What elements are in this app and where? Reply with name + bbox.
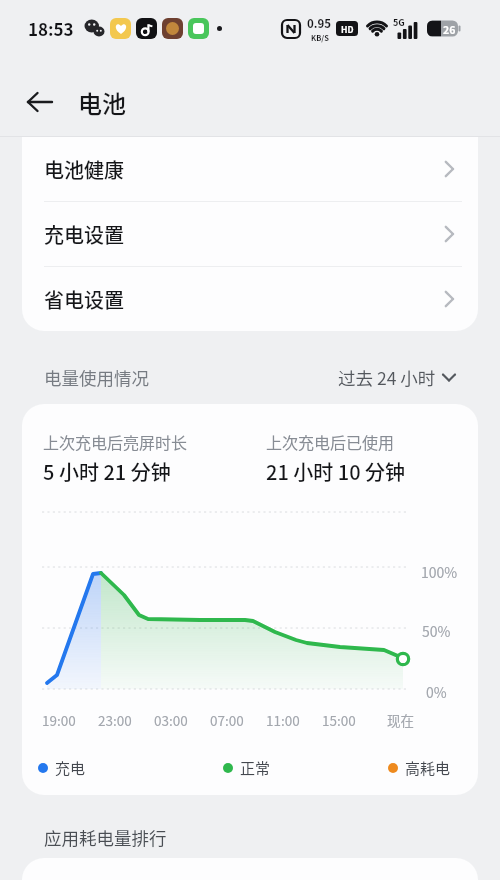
button[interactable]: 电池健康 [22, 137, 478, 201]
staticText: 正常 [240, 757, 271, 779]
staticText: 21 小时 10 分钟 [266, 457, 406, 486]
button[interactable] [26, 82, 66, 122]
staticText: 高耗电 [405, 757, 451, 779]
button[interactable]: 电量使用情况 [44, 361, 456, 393]
staticText: 18:53 [28, 16, 74, 41]
staticText: 上次充电后已使用 [266, 430, 395, 453]
staticText: 现在 [387, 710, 414, 730]
staticText: 5 小时 21 分钟 [43, 457, 171, 486]
staticText: 0% [426, 682, 447, 702]
staticText: HD [341, 23, 354, 35]
staticText: 50% [422, 621, 451, 641]
staticText: KB/S [311, 32, 329, 43]
staticText: 上次充电后亮屏时长 [43, 430, 188, 453]
staticText: 充电设置 [44, 220, 124, 249]
staticText: 5G [393, 16, 405, 29]
staticText: 充电 [55, 757, 86, 779]
staticText: 电池 [78, 85, 126, 120]
staticText: 23:00 [98, 710, 132, 730]
staticText: 电池健康 [44, 155, 124, 184]
staticText: 11:00 [266, 710, 300, 730]
staticText: 07:00 [210, 710, 244, 730]
staticText: 03:00 [154, 710, 188, 730]
staticText: 应用耗电量排行 [44, 825, 167, 850]
staticText: 电量使用情况 [44, 365, 149, 390]
button[interactable]: 充电设置 [22, 202, 478, 266]
staticText: 0.95 [307, 15, 332, 32]
button[interactable]: 省电设置 [22, 267, 478, 331]
staticText: 过去 24 小时 [338, 365, 436, 390]
staticText: 19:00 [42, 710, 76, 730]
staticText: 100% [421, 562, 458, 582]
staticText: 省电设置 [44, 285, 124, 314]
staticText: 26 [443, 22, 456, 37]
staticText: 15:00 [322, 710, 356, 730]
